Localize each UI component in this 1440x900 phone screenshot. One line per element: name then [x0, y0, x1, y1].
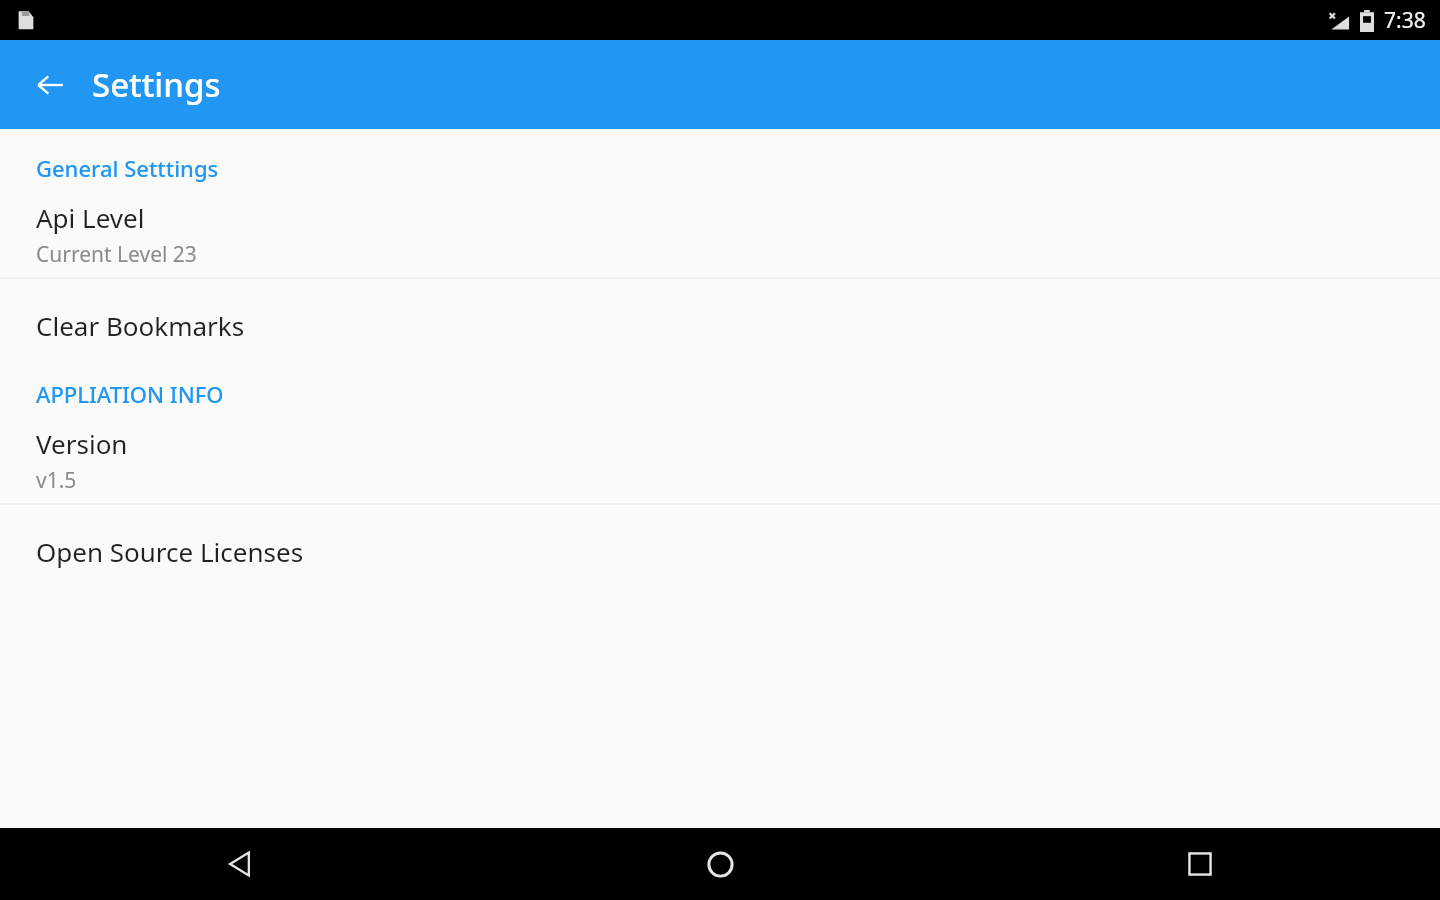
staticText: Api Level: [36, 200, 145, 235]
staticText: 7:38: [1384, 6, 1426, 35]
staticText: General Setttings: [36, 153, 219, 183]
button[interactable]: Back: [0, 828, 480, 900]
staticText: Version: [36, 426, 128, 461]
button[interactable]: Clear Bookmarks: [0, 279, 1440, 371]
staticText: Settings: [92, 62, 221, 107]
button[interactable]: Recents: [960, 828, 1440, 900]
staticText: Clear Bookmarks: [36, 308, 245, 343]
staticText: APPLIATION INFO: [36, 379, 224, 409]
button[interactable]: Version: [0, 417, 1440, 503]
button[interactable]: Home: [480, 828, 960, 900]
button[interactable]: Api Level: [0, 191, 1440, 277]
button[interactable]: Open Source Licenses: [0, 505, 1440, 597]
staticText: v1.5: [36, 466, 77, 495]
staticText: Current Level 23: [36, 240, 197, 269]
button[interactable]: Back: [22, 57, 78, 113]
staticText: Open Source Licenses: [36, 534, 304, 569]
